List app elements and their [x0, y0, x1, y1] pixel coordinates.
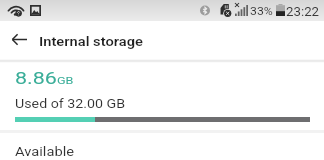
staticText: 33%: [250, 4, 273, 17]
staticText: Internal storage: [39, 34, 144, 49]
staticText: 8.86: [15, 69, 58, 89]
staticText: 23:22: [286, 4, 319, 18]
staticText: Used of 32.00 GB: [15, 96, 126, 111]
button[interactable]: Back: [9, 29, 30, 50]
staticText: GB: [57, 75, 74, 86]
staticText: Available: [15, 143, 75, 159]
